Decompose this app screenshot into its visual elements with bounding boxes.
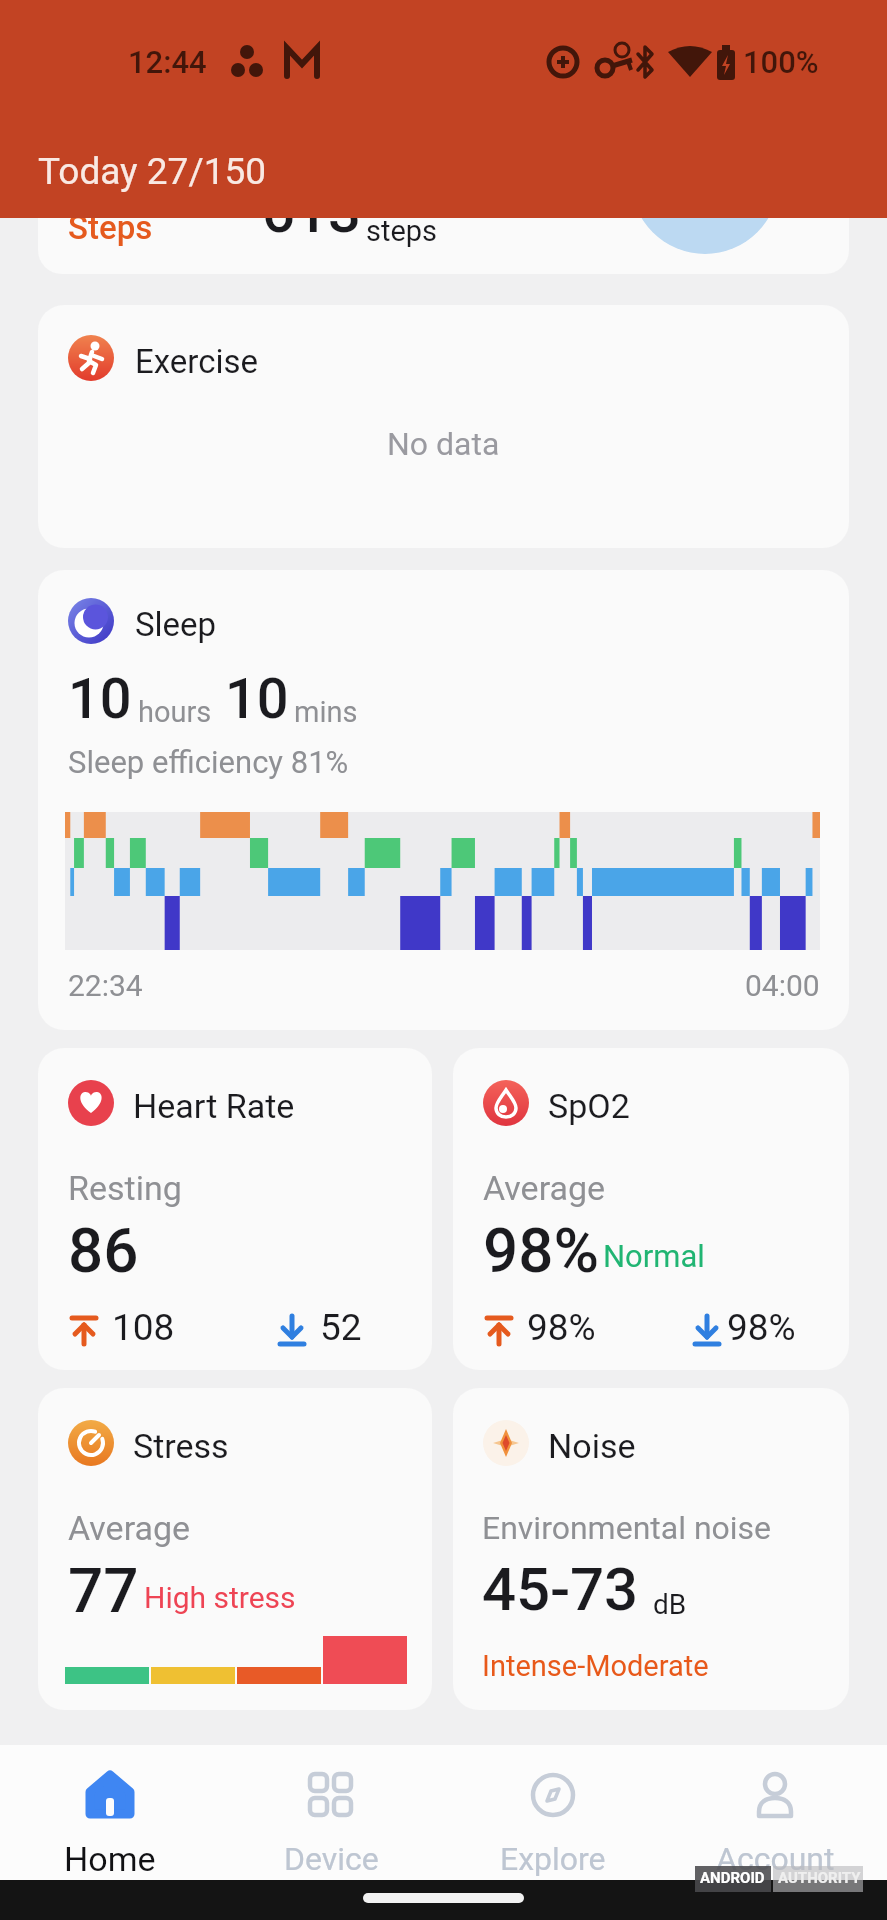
staticText: Environmental noise — [482, 1509, 772, 1547]
staticText: Account — [716, 1840, 835, 1878]
staticText: Explore — [500, 1840, 606, 1878]
staticText: Device — [284, 1840, 379, 1878]
staticText: Normal — [603, 1238, 705, 1274]
staticText: 04:00 — [745, 968, 820, 1003]
staticText: 52 — [320, 1306, 362, 1349]
staticText: Sleep — [135, 605, 217, 644]
staticText: No data — [387, 425, 500, 463]
staticText: 100% — [743, 44, 819, 80]
staticText: 77 — [68, 1554, 139, 1627]
staticText: Average — [68, 1508, 191, 1548]
staticText: mins — [294, 695, 358, 729]
staticText: Intense-Moderate — [482, 1649, 709, 1683]
staticText: Sleep efficiency 81% — [68, 744, 349, 780]
staticText: steps — [366, 214, 438, 248]
staticText: Average — [483, 1168, 606, 1208]
staticText: Noise — [548, 1426, 636, 1466]
staticText: 613 — [262, 212, 361, 240]
staticText: Steps — [68, 212, 153, 247]
staticText: 22:34 — [68, 968, 143, 1003]
staticText: 10 — [225, 666, 289, 732]
button[interactable]: Steps — [38, 212, 849, 274]
button[interactable]: Explore — [448, 1753, 658, 1873]
staticText: Today 27/150 — [38, 150, 267, 193]
staticText: ANDROID — [700, 1869, 765, 1887]
staticText: 108 — [112, 1306, 175, 1349]
button[interactable]: Heart Rate — [38, 1048, 432, 1370]
button[interactable]: Exercise — [38, 305, 849, 548]
button[interactable]: SpO2 — [453, 1048, 849, 1370]
button[interactable]: Device — [226, 1753, 436, 1873]
staticText: hours — [138, 695, 212, 729]
staticText: High stress — [144, 1580, 296, 1615]
staticText: 98% — [727, 1306, 796, 1349]
staticText: SpO2 — [548, 1086, 630, 1126]
button[interactable]: Home — [5, 1753, 215, 1873]
staticText: Exercise — [135, 342, 259, 381]
staticText: Heart Rate — [133, 1086, 295, 1126]
staticText: Home — [64, 1839, 156, 1879]
staticText: Stress — [133, 1426, 229, 1466]
staticText: AUTHORITY — [778, 1869, 861, 1887]
staticText: 98% — [483, 1214, 600, 1287]
staticText: 12:44 — [128, 44, 207, 80]
staticText: 86 — [68, 1214, 139, 1287]
staticText: 10 — [68, 666, 132, 732]
staticText: 45-73 — [482, 1554, 639, 1624]
staticText: 98% — [527, 1306, 596, 1349]
button[interactable]: Stress — [38, 1388, 432, 1710]
button[interactable]: Account — [670, 1753, 880, 1873]
staticText: dB — [653, 1588, 687, 1621]
button[interactable]: Sleep — [38, 570, 849, 1030]
button[interactable]: Noise — [453, 1388, 849, 1710]
staticText: Resting — [68, 1168, 182, 1208]
